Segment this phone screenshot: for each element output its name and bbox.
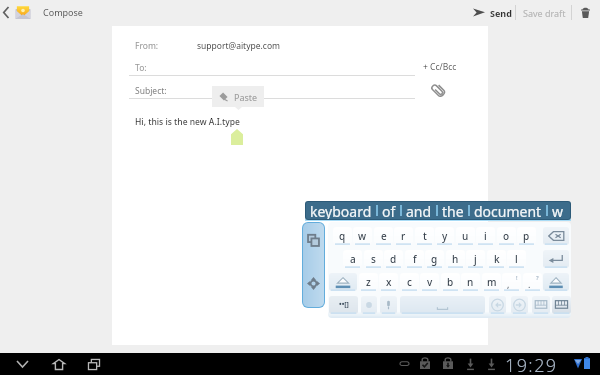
staticText: e [381, 229, 387, 243]
button[interactable]: Navigate up [0, 0, 36, 25]
other: n [461, 273, 480, 291]
button[interactable]: Keyboard settings [307, 234, 320, 247]
button[interactable] [543, 273, 569, 291]
button[interactable] [380, 296, 397, 314]
button[interactable]: w [353, 227, 372, 245]
other: l [507, 250, 526, 268]
button[interactable]: r [394, 227, 413, 245]
other: g [425, 250, 444, 268]
button[interactable]: keyboard [306, 202, 376, 219]
button[interactable]: g [425, 250, 444, 268]
button[interactable]: Paste [212, 86, 264, 107]
staticText: To: [135, 62, 147, 74]
button[interactable]: of [378, 202, 400, 219]
button[interactable]: the [438, 202, 468, 219]
staticText: z [366, 275, 371, 289]
staticText: h [452, 252, 459, 266]
staticText: g [431, 252, 438, 266]
button[interactable]: z [359, 273, 378, 291]
other: z [359, 273, 378, 291]
button[interactable]: + Cc/Bcc [420, 58, 460, 76]
button[interactable]: w [548, 202, 568, 219]
staticText: support@aitype.com [197, 40, 280, 52]
staticText: and [406, 202, 432, 219]
staticText: document [474, 202, 542, 219]
staticText: b [447, 275, 454, 289]
button[interactable]: p [517, 227, 536, 245]
button[interactable]: q [333, 227, 352, 245]
button[interactable]: ••[] [329, 296, 358, 314]
button[interactable] [552, 296, 571, 314]
button[interactable]: Save draft [519, 0, 570, 25]
other: w [353, 227, 372, 245]
button[interactable]: f [405, 250, 424, 268]
staticText: r [401, 229, 406, 243]
button[interactable]: Home [48, 353, 70, 375]
other: x [379, 273, 398, 291]
button[interactable]: document [470, 202, 546, 219]
other: m [482, 273, 501, 291]
button[interactable]: b [441, 273, 460, 291]
button[interactable]: x [379, 273, 398, 291]
button[interactable] [361, 296, 377, 314]
button[interactable]: h [446, 250, 465, 268]
button[interactable]: s [364, 250, 383, 268]
button[interactable]: . [523, 273, 542, 291]
other: e [374, 227, 393, 245]
button[interactable]: and [402, 202, 436, 219]
button[interactable]: Hide keyboard [11, 353, 33, 375]
button[interactable]: v [420, 273, 439, 291]
staticText: From: [135, 40, 159, 52]
button[interactable]: m [482, 273, 501, 291]
button[interactable] [511, 296, 528, 314]
button[interactable]: n [461, 273, 480, 291]
button[interactable]: t [415, 227, 434, 245]
button[interactable] [489, 296, 506, 314]
other: p [517, 227, 536, 245]
staticText: Save draft [523, 7, 566, 19]
button[interactable]: , [502, 273, 521, 291]
button[interactable]: y [435, 227, 454, 245]
button[interactable]: Discard [576, 0, 594, 25]
button[interactable]: Recent apps [83, 353, 105, 375]
staticText: w [552, 202, 564, 219]
staticText: k [494, 252, 500, 266]
button[interactable]: c [400, 273, 419, 291]
staticText: ? [536, 274, 539, 282]
staticText: ••[] [339, 300, 349, 310]
other: v [420, 273, 439, 291]
button[interactable]: o [497, 227, 516, 245]
button[interactable]: k [487, 250, 506, 268]
other: y [435, 227, 454, 245]
other: j [466, 250, 485, 268]
staticText: w [358, 229, 367, 243]
button[interactable] [543, 250, 569, 268]
button[interactable] [543, 227, 569, 245]
button[interactable]: Attach file [428, 80, 448, 100]
button[interactable] [329, 273, 357, 291]
staticText: . [528, 278, 531, 290]
staticText: u [462, 229, 469, 243]
button[interactable]: d [384, 250, 403, 268]
button[interactable]: a [343, 250, 362, 268]
button[interactable]: u [456, 227, 475, 245]
button[interactable]: Send [470, 0, 516, 25]
button[interactable] [532, 296, 550, 314]
button[interactable]: j [466, 250, 485, 268]
staticText: Hi, this is the new A.I.type [135, 116, 240, 128]
staticText: l [515, 252, 518, 266]
button[interactable]: Move keyboard [307, 277, 320, 290]
other: , [502, 273, 521, 291]
other: a [343, 250, 362, 268]
button[interactable]: e [374, 227, 393, 245]
staticText: Subject: [135, 85, 167, 97]
staticText: c [407, 275, 412, 289]
staticText: i [484, 229, 487, 243]
button[interactable]: l [507, 250, 526, 268]
button[interactable] [400, 296, 485, 314]
other: q [333, 227, 352, 245]
staticText: s [371, 252, 376, 266]
other: Cursor left [489, 296, 506, 314]
other: Voice input [380, 296, 397, 314]
button[interactable]: i [476, 227, 495, 245]
